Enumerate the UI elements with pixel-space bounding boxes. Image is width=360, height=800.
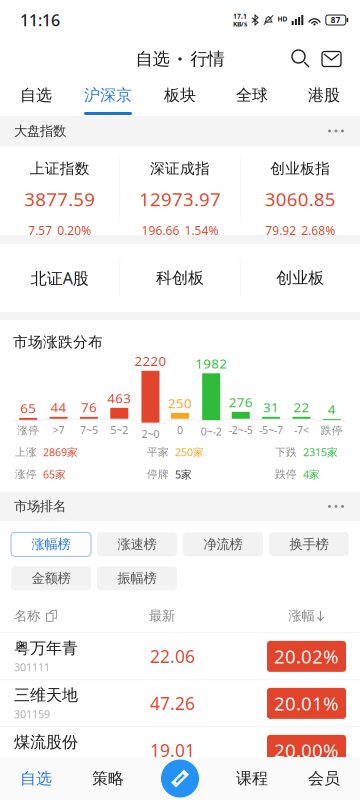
staticText: 2~0 xyxy=(141,427,159,441)
staticText: 粤万年青 xyxy=(14,638,78,658)
staticText: 0~-2 xyxy=(201,424,222,438)
staticText: 79.92 xyxy=(265,222,296,238)
staticText: 课程 xyxy=(236,769,268,788)
button[interactable]: 金额榜 xyxy=(11,566,91,590)
staticText: 1.54% xyxy=(184,222,218,238)
staticText: 4家 xyxy=(303,467,320,481)
staticText: 12973.97 xyxy=(139,187,221,211)
staticText: 20.00% xyxy=(274,738,339,763)
staticText: 0 xyxy=(177,423,183,437)
button[interactable]: 换手榜 xyxy=(269,532,349,556)
staticText: 涨速榜 xyxy=(117,536,156,553)
staticText: KB/s xyxy=(233,19,247,28)
staticText: 20.01% xyxy=(274,691,339,716)
staticText: 策略 xyxy=(92,769,124,788)
staticText: 5家 xyxy=(175,467,192,481)
staticText: 1982 xyxy=(195,355,227,372)
button[interactable]: 课程 xyxy=(216,757,288,800)
staticText: 19.01 xyxy=(150,739,195,762)
staticText: 市场涨跌分布 xyxy=(13,333,103,351)
staticText: 301159 xyxy=(14,707,50,721)
staticText: 0.20% xyxy=(57,222,91,238)
staticText: 47.26 xyxy=(150,692,195,715)
button[interactable]: 沪深京 xyxy=(72,78,144,116)
button[interactable]: 粤万年青 xyxy=(0,633,360,679)
button[interactable]: 科创板 xyxy=(120,244,240,312)
button[interactable]: 振幅榜 xyxy=(97,566,177,590)
staticText: 涨幅榜 xyxy=(31,536,70,553)
staticText: 2.68% xyxy=(301,222,335,238)
staticText: 4 xyxy=(328,400,336,418)
staticText: 涨幅 xyxy=(288,608,314,624)
button[interactable]: 上证指数 xyxy=(0,146,119,235)
staticText: 名称 xyxy=(14,608,40,624)
button[interactable]: 涨速榜 xyxy=(97,532,177,556)
staticText: 振幅榜 xyxy=(117,570,156,587)
button[interactable]: 北证A股 xyxy=(0,244,119,312)
button[interactable]: 三维天地 xyxy=(0,680,360,726)
staticText: 87 xyxy=(331,15,341,25)
staticText: 三维天地 xyxy=(14,685,78,705)
button[interactable]: 深证成指 xyxy=(120,146,240,235)
staticText: 2315家 xyxy=(303,445,338,459)
staticText: -7< xyxy=(294,423,309,437)
staticText: 全球 xyxy=(236,85,268,105)
staticText: 会员 xyxy=(308,769,340,788)
staticText: -5~-7 xyxy=(259,423,283,437)
staticText: 463 xyxy=(107,389,131,407)
staticText: 76 xyxy=(81,398,97,416)
button[interactable]: 搜索 xyxy=(285,50,317,68)
staticText: 煤流股份 xyxy=(14,732,78,752)
staticText: 20.02% xyxy=(274,644,339,669)
staticText: 3060.85 xyxy=(265,187,336,211)
staticText: 净流榜 xyxy=(203,536,242,553)
button[interactable]: 交易 xyxy=(144,757,216,800)
button[interactable]: 全球 xyxy=(216,78,288,116)
staticText: 最新 xyxy=(149,608,175,624)
staticText: 上涨 xyxy=(15,445,37,459)
button[interactable]: 创业板指 xyxy=(241,146,360,235)
staticText: 7~5 xyxy=(80,423,98,437)
button[interactable]: 自选 xyxy=(0,78,72,116)
button[interactable]: 自选 xyxy=(0,757,72,800)
staticText: 11:16 xyxy=(20,9,60,31)
button[interactable]: 涨幅榜 xyxy=(11,532,91,556)
staticText: 7.57 xyxy=(28,222,52,238)
staticText: 大盘指数 xyxy=(14,123,66,139)
staticText: 停牌 xyxy=(147,468,169,481)
staticText: 250 xyxy=(168,394,192,412)
staticText: 行情 xyxy=(191,48,225,70)
staticText: 22 xyxy=(293,398,309,416)
staticText: 跌停 xyxy=(321,424,343,437)
staticText: 17.1 xyxy=(233,12,247,20)
button[interactable]: 更多 xyxy=(324,126,348,135)
button[interactable]: 煤流股份 xyxy=(0,727,360,773)
staticText: 上证指数 xyxy=(30,160,90,178)
button[interactable]: 更多 xyxy=(324,502,348,511)
staticText: 港股 xyxy=(308,85,340,105)
button[interactable]: 港股 xyxy=(288,78,360,116)
staticText: 301111 xyxy=(14,660,50,674)
button[interactable]: 会员 xyxy=(288,757,360,800)
staticText: 自选 xyxy=(20,769,52,788)
staticText: 跌停 xyxy=(275,468,297,481)
staticText: 44 xyxy=(50,398,66,416)
staticText: 196.66 xyxy=(141,222,179,238)
button[interactable]: 消息 xyxy=(317,51,346,66)
button[interactable]: 板块 xyxy=(144,78,216,116)
staticText: 创业板指 xyxy=(270,160,330,178)
staticText: 3877.59 xyxy=(24,187,95,211)
staticText: 31 xyxy=(263,398,279,416)
staticText: 沪深京 xyxy=(84,85,132,105)
staticText: -2~-5 xyxy=(229,423,253,437)
button[interactable]: 创业板 xyxy=(241,244,360,312)
staticText: 平家 xyxy=(147,445,169,459)
staticText: 自选 xyxy=(135,48,169,70)
staticText: HD xyxy=(277,14,287,23)
staticText: 深证成指 xyxy=(150,160,210,178)
staticText: 下跌 xyxy=(275,445,297,459)
button[interactable]: 净流榜 xyxy=(183,532,263,556)
staticText: 250家 xyxy=(175,445,204,459)
button[interactable]: 策略 xyxy=(72,757,144,800)
